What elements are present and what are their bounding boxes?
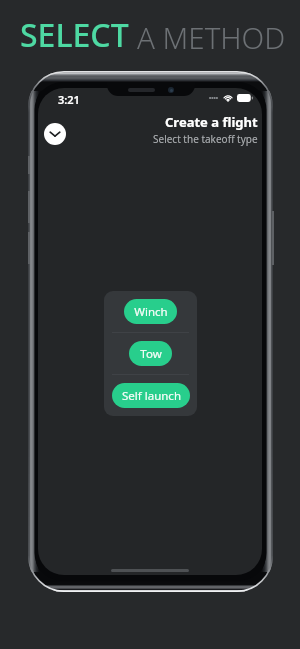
- staticText: 3:21: [58, 92, 80, 107]
- staticText: A METHOD: [137, 17, 286, 57]
- button[interactable]: Self launch: [112, 383, 190, 408]
- staticText: Self launch: [122, 388, 181, 404]
- button[interactable]: Collapse: [44, 123, 66, 145]
- button[interactable]: Tow: [129, 341, 172, 366]
- button[interactable]: Winch: [124, 299, 177, 324]
- staticText: Tow: [140, 346, 162, 362]
- staticText: SELECT: [20, 13, 129, 57]
- staticText: Create a flight: [165, 113, 258, 131]
- staticText: Select the takeoff type: [153, 132, 258, 146]
- staticText: Winch: [134, 304, 168, 320]
